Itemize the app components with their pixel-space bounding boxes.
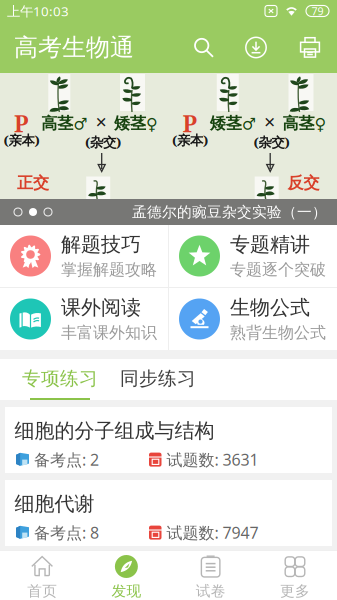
staticText: 更多 bbox=[280, 582, 310, 600]
staticText: 生物公式 bbox=[230, 295, 310, 320]
staticText: P bbox=[14, 108, 28, 139]
staticText: 细胞代谢 bbox=[14, 491, 94, 516]
staticText: 首页 bbox=[27, 582, 57, 600]
staticText: 熟背生物公式 bbox=[230, 323, 326, 343]
staticText: 矮茎♂ bbox=[210, 113, 256, 134]
staticText: P bbox=[182, 108, 196, 139]
button[interactable]: 更多 bbox=[253, 550, 337, 600]
staticText: ✕ bbox=[263, 114, 275, 131]
staticText: 发现 bbox=[111, 582, 141, 600]
staticText: 细胞的生命历程 bbox=[14, 564, 154, 589]
staticText: 高茎♀ bbox=[282, 113, 326, 134]
staticText: (杂交) bbox=[253, 133, 289, 151]
button[interactable]: 生物公式 bbox=[169, 288, 337, 350]
staticText: 备考点: 8 bbox=[34, 522, 99, 543]
staticText: 课外阅读 bbox=[61, 295, 141, 320]
staticText: 高茎♂ bbox=[41, 113, 87, 134]
button[interactable]: 细胞代谢 bbox=[0, 480, 337, 546]
button[interactable]: 下载 bbox=[229, 22, 283, 73]
button[interactable]: 细胞的分子组成与结构 bbox=[0, 407, 337, 473]
staticText: 试卷 bbox=[196, 582, 226, 600]
staticText: 专项练习 bbox=[22, 367, 98, 390]
staticText: 正交 bbox=[17, 173, 49, 193]
staticText: 反交 bbox=[287, 173, 319, 193]
button[interactable]: 首页 bbox=[0, 550, 84, 600]
staticText: 79 bbox=[311, 4, 323, 18]
staticText: (亲本) bbox=[172, 131, 208, 149]
staticText: 掌握解题攻略 bbox=[61, 260, 157, 280]
staticText: 专题精讲 bbox=[230, 232, 310, 257]
staticText: 备考点: 5 bbox=[34, 595, 99, 600]
staticText: 矮茎♀ bbox=[114, 113, 158, 134]
button[interactable]: 课外阅读 bbox=[0, 288, 168, 350]
staticText: ✕ bbox=[95, 114, 107, 131]
staticText: (杂交) bbox=[85, 133, 121, 151]
button[interactable]: 搜索 bbox=[178, 22, 229, 73]
staticText: 备考点: 2 bbox=[34, 449, 99, 470]
staticText: 上午10:03 bbox=[7, 2, 69, 20]
button[interactable]: 解题技巧 bbox=[0, 225, 168, 287]
staticText: 高考生物通 bbox=[14, 33, 134, 62]
button[interactable]: 发现 bbox=[84, 550, 168, 600]
button[interactable]: 试卷 bbox=[168, 550, 253, 600]
button[interactable]: 同步练习 bbox=[98, 359, 196, 400]
staticText: 孟德尔的豌豆杂交实验（一） bbox=[132, 203, 327, 221]
staticText: 专题逐个突破 bbox=[230, 260, 326, 280]
staticText: (亲本) bbox=[3, 131, 39, 149]
button[interactable]: 专项练习 bbox=[22, 359, 98, 400]
staticText: 丰富课外知识 bbox=[61, 323, 157, 343]
staticText: 细胞的分子组成与结构 bbox=[14, 418, 214, 443]
staticText: 同步练习 bbox=[120, 367, 196, 390]
staticText: 试题数: 4210 bbox=[166, 595, 258, 600]
staticText: 试题数: 3631 bbox=[166, 449, 258, 470]
button[interactable]: 打印 bbox=[283, 22, 337, 73]
button[interactable]: 专题精讲 bbox=[169, 225, 337, 287]
button[interactable]: 细胞的生命历程 bbox=[0, 553, 337, 600]
staticText: 试题数: 7947 bbox=[166, 522, 258, 543]
staticText: 解题技巧 bbox=[61, 232, 141, 257]
